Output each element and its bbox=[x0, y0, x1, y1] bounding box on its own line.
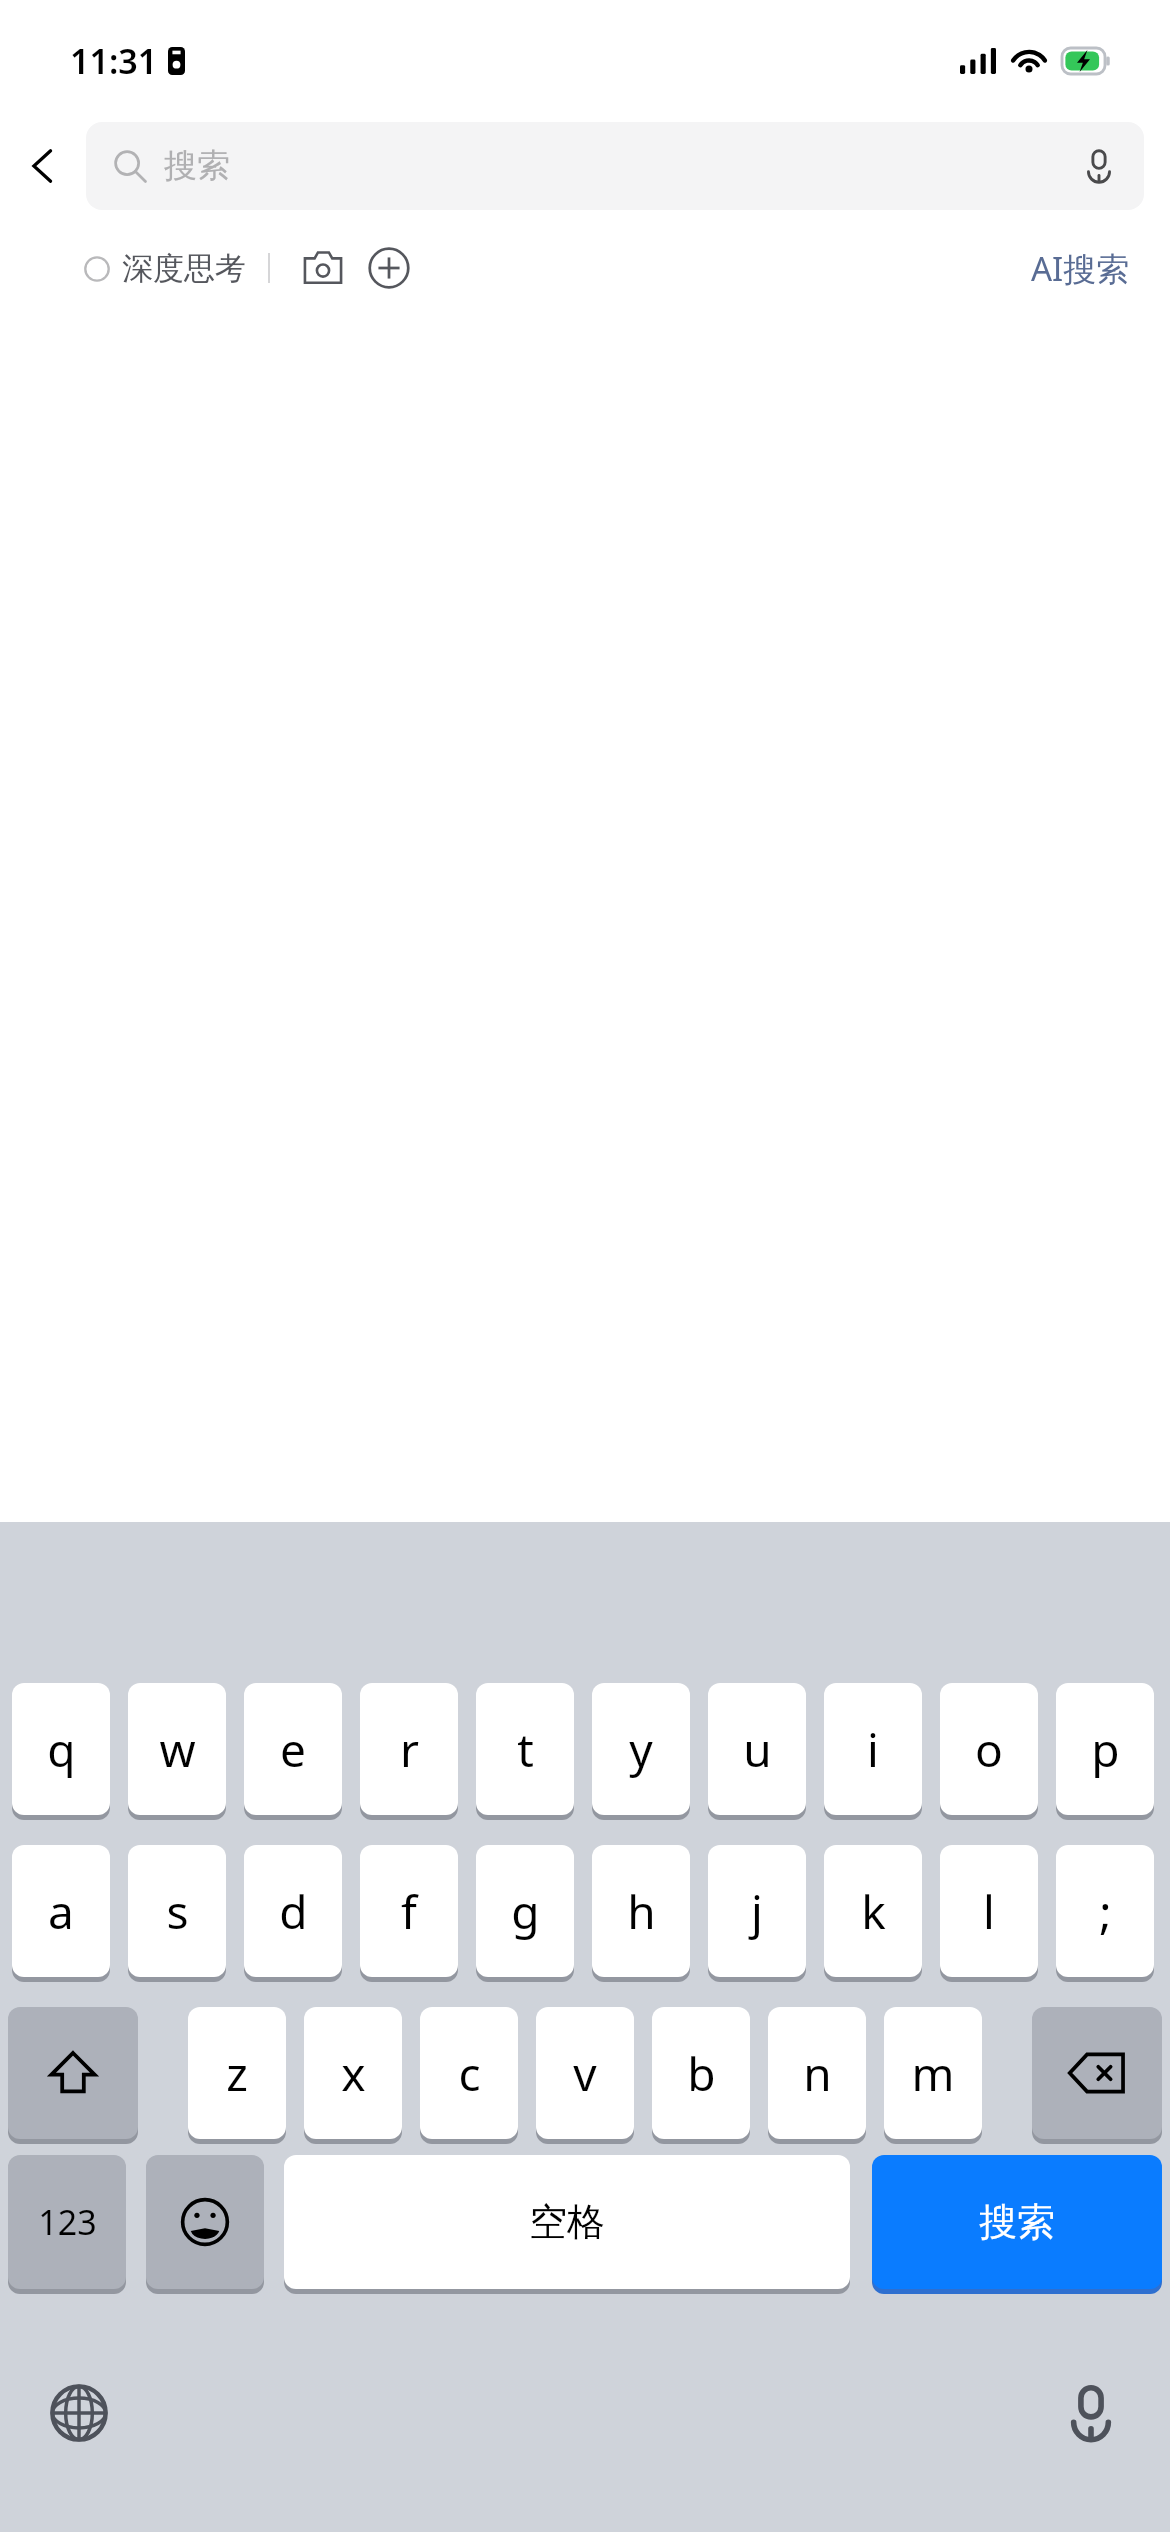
button[interactable]: Switch keyboard bbox=[46, 2380, 112, 2446]
button[interactable]: Delete bbox=[1032, 2007, 1162, 2145]
button[interactable]: c bbox=[420, 2007, 518, 2145]
button[interactable]: x bbox=[304, 2007, 402, 2145]
button[interactable]: j bbox=[708, 1845, 806, 1983]
staticText: w bbox=[159, 1718, 196, 1781]
button[interactable]: 123 bbox=[8, 2155, 126, 2295]
button[interactable]: 深度思考 bbox=[84, 239, 246, 298]
button[interactable]: m bbox=[884, 2007, 982, 2145]
button[interactable]: Back bbox=[0, 112, 86, 220]
button[interactable]: k bbox=[824, 1845, 922, 1983]
button[interactable]: b bbox=[652, 2007, 750, 2145]
staticText: r bbox=[400, 1718, 419, 1781]
staticText: l bbox=[983, 1880, 995, 1943]
button[interactable]: s bbox=[128, 1845, 226, 1983]
button[interactable]: Camera search bbox=[296, 241, 350, 295]
staticText: 空格 bbox=[529, 2198, 605, 2246]
staticText: 搜索 bbox=[979, 2198, 1055, 2246]
staticText: o bbox=[975, 1718, 1003, 1781]
button[interactable]: v bbox=[536, 2007, 634, 2145]
button[interactable]: h bbox=[592, 1845, 690, 1983]
staticText: b bbox=[687, 2042, 716, 2105]
button[interactable]: 搜索 bbox=[86, 122, 1144, 210]
button[interactable]: AI搜索 bbox=[1025, 236, 1136, 301]
staticText: m bbox=[911, 2042, 955, 2105]
staticText: 123 bbox=[38, 2199, 97, 2245]
staticText: k bbox=[861, 1880, 886, 1943]
button[interactable]: q bbox=[12, 1683, 110, 1821]
button[interactable]: n bbox=[768, 2007, 866, 2145]
button[interactable]: o bbox=[940, 1683, 1038, 1821]
staticText: v bbox=[573, 2042, 597, 2105]
button[interactable]: u bbox=[708, 1683, 806, 1821]
button[interactable]: Dictation bbox=[1058, 2380, 1124, 2446]
button[interactable]: Add bbox=[362, 241, 416, 295]
staticText: n bbox=[803, 2042, 832, 2105]
staticText: g bbox=[511, 1880, 540, 1943]
button[interactable]: Shift bbox=[8, 2007, 138, 2145]
staticText: u bbox=[743, 1718, 772, 1781]
staticText: AI搜索 bbox=[1031, 246, 1130, 291]
staticText: p bbox=[1091, 1718, 1120, 1781]
staticText: d bbox=[279, 1880, 308, 1943]
button[interactable]: i bbox=[824, 1683, 922, 1821]
button[interactable]: r bbox=[360, 1683, 458, 1821]
staticText: t bbox=[517, 1718, 534, 1781]
button[interactable]: g bbox=[476, 1845, 574, 1983]
staticText: c bbox=[458, 2042, 481, 2105]
staticText: ; bbox=[1099, 1880, 1112, 1943]
button[interactable]: d bbox=[244, 1845, 342, 1983]
staticText: h bbox=[627, 1880, 656, 1943]
staticText: y bbox=[629, 1718, 653, 1781]
button[interactable]: 空格 bbox=[284, 2155, 850, 2295]
staticText: 搜索 bbox=[164, 145, 230, 187]
button[interactable]: f bbox=[360, 1845, 458, 1983]
button[interactable]: e bbox=[244, 1683, 342, 1821]
staticText: 深度思考 bbox=[122, 249, 246, 288]
staticText: f bbox=[401, 1880, 417, 1943]
staticText: z bbox=[226, 2042, 248, 2105]
staticText: i bbox=[867, 1718, 879, 1781]
staticText: e bbox=[280, 1718, 306, 1781]
button[interactable]: 搜索 bbox=[872, 2155, 1162, 2295]
staticText: s bbox=[166, 1880, 189, 1943]
button[interactable]: z bbox=[188, 2007, 286, 2145]
staticText: 11:31 bbox=[70, 38, 158, 84]
button[interactable]: w bbox=[128, 1683, 226, 1821]
button[interactable]: p bbox=[1056, 1683, 1154, 1821]
button[interactable]: t bbox=[476, 1683, 574, 1821]
button[interactable]: Voice search bbox=[1076, 143, 1122, 189]
button[interactable]: l bbox=[940, 1845, 1038, 1983]
button[interactable]: a bbox=[12, 1845, 110, 1983]
button[interactable]: y bbox=[592, 1683, 690, 1821]
staticText: x bbox=[341, 2042, 366, 2105]
staticText: a bbox=[48, 1880, 74, 1943]
button[interactable]: ; bbox=[1056, 1845, 1154, 1983]
staticText: j bbox=[751, 1880, 763, 1943]
button[interactable]: Emoji bbox=[146, 2155, 264, 2295]
staticText: q bbox=[47, 1718, 76, 1781]
